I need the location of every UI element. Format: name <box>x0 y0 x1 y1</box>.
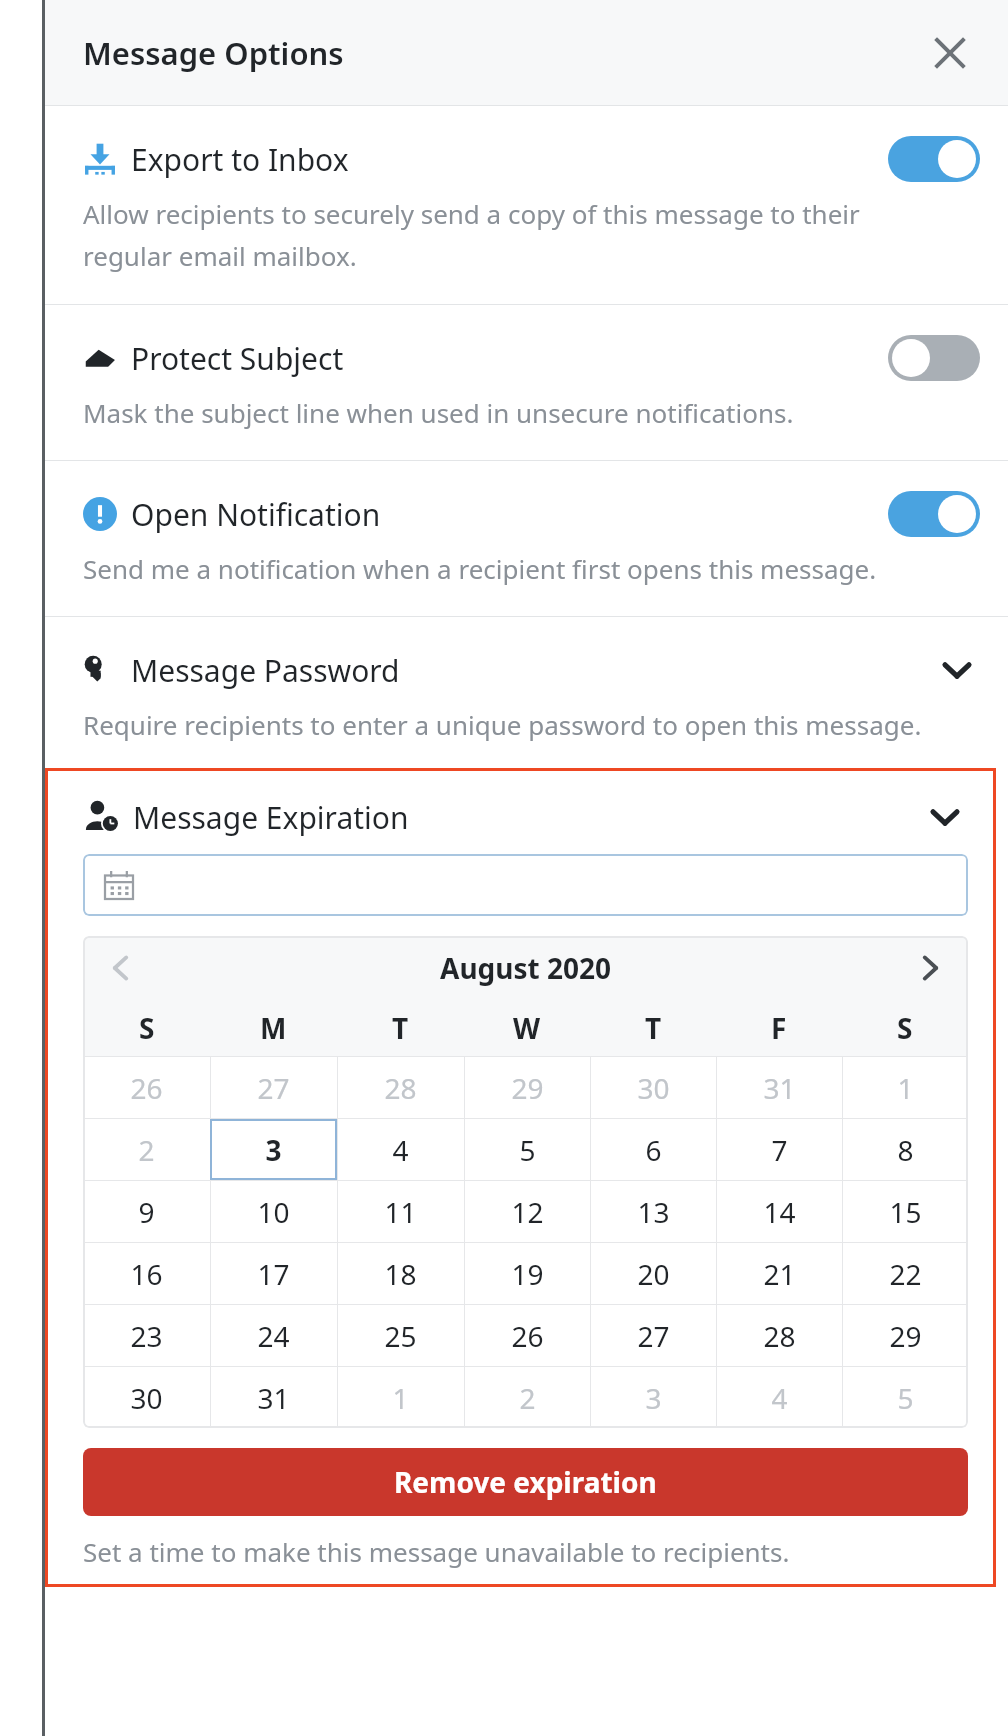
staticText: 10 <box>257 1193 290 1231</box>
staticText: 29 <box>511 1069 544 1107</box>
staticText: 14 <box>763 1193 796 1231</box>
button[interactable]: Collapse <box>922 794 968 840</box>
button[interactable]: 19 <box>464 1243 590 1304</box>
button[interactable]: 2 <box>464 1367 590 1428</box>
staticText: 12 <box>511 1193 544 1231</box>
button[interactable]: 25 <box>337 1305 464 1366</box>
staticText: 13 <box>637 1193 670 1231</box>
staticText: 3 <box>645 1379 662 1417</box>
staticText: 1 <box>897 1069 914 1107</box>
staticText: 20 <box>637 1255 670 1293</box>
button[interactable]: 3 <box>590 1367 716 1428</box>
staticText: Require recipients to enter a unique pas… <box>83 707 922 742</box>
staticText: 4 <box>771 1379 788 1417</box>
button[interactable]: 30 <box>83 1367 210 1428</box>
staticText: 11 <box>384 1193 417 1231</box>
staticText: 31 <box>257 1379 290 1417</box>
staticText: T <box>392 1009 409 1047</box>
staticText: Set a time to make this message unavaila… <box>83 1534 790 1569</box>
button[interactable]: Pick date <box>83 854 968 916</box>
button[interactable]: Protect Subject <box>45 305 1008 460</box>
button[interactable]: 17 <box>210 1243 337 1304</box>
button[interactable]: 29 <box>464 1057 590 1118</box>
button[interactable]: Protect Subject <box>888 335 980 381</box>
button[interactable]: 15 <box>842 1181 968 1242</box>
button[interactable]: 14 <box>716 1181 842 1242</box>
staticText: 28 <box>763 1317 796 1355</box>
button[interactable]: 4 <box>716 1367 842 1428</box>
staticText: 27 <box>257 1069 290 1107</box>
button[interactable]: 29 <box>842 1305 968 1366</box>
staticText: Export to Inbox <box>131 139 349 180</box>
button[interactable]: 1 <box>842 1057 968 1118</box>
button[interactable]: 27 <box>590 1305 716 1366</box>
staticText: 2 <box>519 1379 536 1417</box>
staticText: Message Expiration <box>133 797 409 838</box>
staticText: 8 <box>897 1131 914 1169</box>
staticText: M <box>260 1009 287 1047</box>
staticText: 15 <box>889 1193 922 1231</box>
button[interactable]: 4 <box>337 1119 464 1180</box>
button[interactable]: 28 <box>337 1057 464 1118</box>
staticText: S <box>139 1009 155 1047</box>
button[interactable]: Export to Inbox <box>45 106 1008 304</box>
button[interactable]: Previous month <box>97 944 145 992</box>
staticText: 22 <box>889 1255 922 1293</box>
button[interactable]: 31 <box>210 1367 337 1428</box>
staticText: 28 <box>384 1069 417 1107</box>
staticText: 29 <box>889 1317 922 1355</box>
staticText: 4 <box>392 1131 409 1169</box>
button[interactable]: 24 <box>210 1305 337 1366</box>
staticText: August 2020 <box>440 949 612 987</box>
staticText: 18 <box>384 1255 417 1293</box>
staticText: 30 <box>637 1069 670 1107</box>
button[interactable]: 16 <box>83 1243 210 1304</box>
button[interactable]: 31 <box>716 1057 842 1118</box>
button[interactable]: 10 <box>210 1181 337 1242</box>
button[interactable]: 7 <box>716 1119 842 1180</box>
button[interactable]: 13 <box>590 1181 716 1242</box>
button[interactable]: 5 <box>464 1119 590 1180</box>
staticText: Protect Subject <box>131 338 344 379</box>
button[interactable]: 2 <box>83 1119 210 1180</box>
button[interactable]: 30 <box>590 1057 716 1118</box>
button[interactable]: 28 <box>716 1305 842 1366</box>
staticText: Send me a notification when a recipient … <box>83 551 877 586</box>
staticText: 5 <box>897 1379 914 1417</box>
staticText: 25 <box>384 1317 417 1355</box>
button[interactable]: Open Notification <box>45 461 1008 616</box>
button[interactable]: 9 <box>83 1181 210 1242</box>
button[interactable]: 12 <box>464 1181 590 1242</box>
staticText: 21 <box>763 1255 796 1293</box>
staticText: Allow recipients to securely send a copy… <box>83 196 860 274</box>
button[interactable]: Close <box>922 25 978 81</box>
staticText: F <box>771 1009 787 1047</box>
button[interactable]: 26 <box>464 1305 590 1366</box>
button[interactable]: Message Password <box>45 617 1008 768</box>
button[interactable]: 20 <box>590 1243 716 1304</box>
staticText: S <box>897 1009 913 1047</box>
button[interactable]: Export to Inbox <box>888 136 980 182</box>
button[interactable]: 8 <box>842 1119 968 1180</box>
staticText: Remove expiration <box>394 1463 657 1501</box>
staticText: 5 <box>519 1131 536 1169</box>
staticText: Message Options <box>83 32 344 74</box>
button[interactable]: 11 <box>337 1181 464 1242</box>
button[interactable]: 26 <box>83 1057 210 1118</box>
button[interactable]: 27 <box>210 1057 337 1118</box>
button[interactable]: 18 <box>337 1243 464 1304</box>
button[interactable]: 5 <box>842 1367 968 1428</box>
button[interactable]: Open Notification <box>888 491 980 537</box>
button[interactable]: Expand <box>934 647 980 693</box>
button[interactable]: 3 <box>210 1119 337 1180</box>
button[interactable]: 1 <box>337 1367 464 1428</box>
staticText: 17 <box>257 1255 290 1293</box>
button[interactable]: 21 <box>716 1243 842 1304</box>
button[interactable]: Next month <box>906 944 954 992</box>
button[interactable]: 22 <box>842 1243 968 1304</box>
button[interactable]: Remove expiration <box>83 1448 968 1516</box>
staticText: W <box>513 1009 541 1047</box>
button[interactable]: 23 <box>83 1305 210 1366</box>
button[interactable]: 6 <box>590 1119 716 1180</box>
staticText: 30 <box>130 1379 163 1417</box>
